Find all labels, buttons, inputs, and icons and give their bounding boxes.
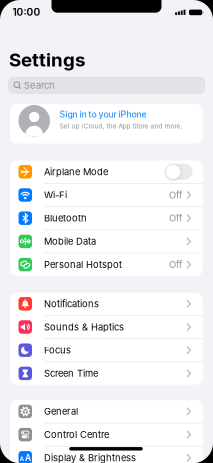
staticText: Settings bbox=[9, 48, 85, 71]
staticText: Sign in to your iPhone bbox=[59, 109, 146, 119]
button[interactable]: Screen Time bbox=[10, 362, 203, 385]
staticText: Focus bbox=[44, 345, 71, 356]
staticText: Off bbox=[169, 189, 182, 201]
staticText: Off bbox=[169, 213, 182, 224]
staticText: Control Centre bbox=[44, 429, 109, 440]
button[interactable]: Focus bbox=[10, 339, 203, 361]
button[interactable]: Wi-Fi bbox=[10, 184, 203, 206]
staticText: 10:00 bbox=[12, 6, 40, 18]
button[interactable]: Search bbox=[8, 77, 205, 94]
button[interactable]: Bluetooth bbox=[10, 207, 203, 229]
staticText: Airplane Mode bbox=[44, 166, 108, 177]
button[interactable]: Sounds & Haptics bbox=[10, 316, 203, 338]
button[interactable]: Personal Hotspot bbox=[10, 253, 203, 276]
staticText: Set up iCloud, the App Store and more. bbox=[59, 122, 182, 130]
button[interactable]: Notifications bbox=[10, 292, 203, 315]
staticText: Screen Time bbox=[44, 368, 98, 379]
button[interactable]: Airplane Mode bbox=[165, 164, 192, 180]
staticText: Display & Brightness bbox=[44, 452, 136, 463]
button[interactable]: General bbox=[10, 400, 203, 423]
staticText: Bluetooth bbox=[44, 213, 87, 224]
button[interactable]: Sign in to your iPhone bbox=[10, 104, 203, 143]
button[interactable]: A bbox=[10, 446, 203, 463]
staticText: Search bbox=[24, 80, 55, 91]
staticText: A bbox=[19, 455, 24, 463]
staticText: Wi-Fi bbox=[44, 189, 67, 201]
staticText: A bbox=[25, 453, 31, 463]
staticText: Sounds & Haptics bbox=[44, 321, 124, 333]
staticText: Notifications bbox=[44, 298, 99, 309]
staticText: General bbox=[44, 406, 78, 417]
staticText: Personal Hotspot bbox=[44, 259, 122, 270]
staticText: Mobile Data bbox=[44, 236, 96, 247]
staticText: Off bbox=[169, 259, 182, 270]
button[interactable]: Control Centre bbox=[10, 423, 203, 446]
button[interactable]: Mobile Data bbox=[10, 230, 203, 253]
